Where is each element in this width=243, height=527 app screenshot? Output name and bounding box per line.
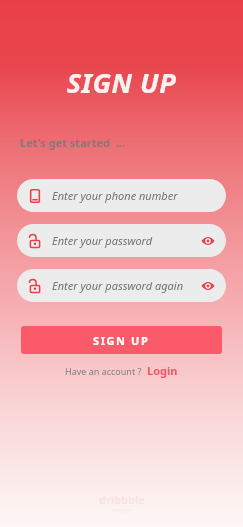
staticText: Enter your phone number (52, 188, 217, 203)
button[interactable]: Show password (199, 232, 217, 250)
button[interactable]: Login (147, 363, 178, 378)
staticText: SIGN UP (93, 333, 150, 348)
button[interactable]: Show password (199, 277, 217, 295)
button[interactable]: Enter your phone number (17, 179, 226, 212)
staticText: dribbble (99, 492, 145, 507)
staticText: Let's get started ... (20, 135, 125, 150)
staticText: Login (147, 363, 178, 378)
staticText: Enter your password again (52, 278, 199, 293)
button[interactable]: Enter your password (17, 224, 226, 257)
button[interactable]: SIGN UP (21, 326, 222, 354)
staticText: SIGN UP (0, 64, 243, 101)
staticText: Have an account ? (65, 365, 142, 377)
staticText: Enter your password (52, 233, 199, 248)
button[interactable]: Enter your password again (17, 269, 226, 302)
